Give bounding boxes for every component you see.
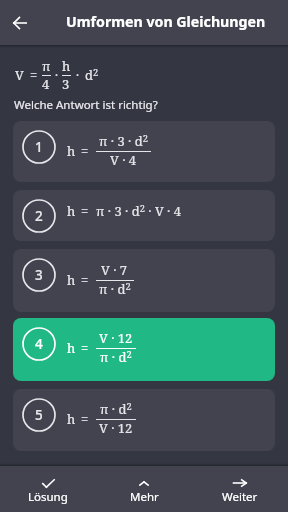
button[interactable]: 1: [13, 121, 275, 182]
staticText: Umformen von Gleichungen: [66, 12, 266, 31]
button[interactable]: 2: [13, 190, 275, 241]
staticText: ·: [55, 67, 59, 83]
staticText: Welche Antwort ist richtig?: [14, 97, 158, 113]
staticText: Weiter: [222, 489, 258, 505]
staticText: h: [62, 57, 71, 75]
staticText: π · 3 · d2: [99, 132, 148, 150]
staticText: 4: [42, 75, 50, 93]
staticText: π · d2: [99, 280, 131, 298]
staticText: V · 4: [110, 151, 137, 169]
staticText: h: [67, 142, 76, 160]
staticText: V: [15, 66, 24, 84]
staticText: π: [42, 57, 51, 75]
staticText: 4: [35, 335, 43, 353]
staticText: 1: [35, 138, 43, 156]
button[interactable]: Back: [0, 3, 39, 42]
button[interactable]: 4: [13, 318, 275, 381]
staticText: π · d2: [100, 400, 132, 418]
staticText: h: [67, 202, 76, 220]
staticText: Mehr: [130, 489, 159, 505]
staticText: h: [67, 410, 76, 428]
staticText: V · 12: [99, 419, 133, 437]
button[interactable]: Mehr: [96, 466, 192, 512]
staticText: V · 7: [101, 261, 128, 279]
staticText: h: [67, 271, 76, 289]
staticText: 2: [35, 207, 43, 225]
staticText: ·: [76, 67, 80, 83]
staticText: h: [67, 339, 76, 357]
staticText: =: [30, 66, 38, 84]
button[interactable]: 5: [13, 389, 275, 451]
staticText: 3: [35, 266, 43, 284]
staticText: =: [81, 410, 89, 428]
staticText: =: [81, 339, 89, 357]
staticText: =: [81, 142, 89, 160]
button[interactable]: Lösung: [0, 466, 96, 512]
staticText: =: [81, 271, 89, 289]
staticText: d2: [85, 66, 99, 84]
staticText: Lösung: [28, 489, 68, 505]
staticText: =: [81, 202, 89, 220]
staticText: 3: [62, 75, 70, 93]
staticText: π · 3 · d2 · V · 4: [96, 202, 181, 220]
staticText: π · d2: [100, 348, 132, 366]
staticText: 5: [35, 406, 43, 424]
button[interactable]: Weiter: [192, 466, 288, 512]
button[interactable]: 3: [13, 249, 275, 312]
staticText: V · 12: [99, 329, 133, 347]
